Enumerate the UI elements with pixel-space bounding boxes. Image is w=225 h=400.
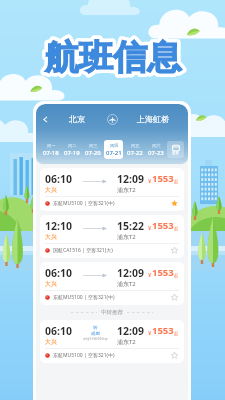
button[interactable]: Favourite (170, 199, 179, 208)
staticText: 起 (174, 179, 179, 185)
staticText: 大兴 (45, 186, 57, 194)
button[interactable]: 周四 (104, 140, 123, 159)
staticText: 周六 (152, 143, 161, 148)
button[interactable]: 上海虹桥 (124, 114, 182, 124)
button[interactable]: 06:10 (40, 262, 184, 305)
button[interactable]: 12:10 (40, 215, 184, 258)
button[interactable]: 北京 (54, 114, 100, 124)
staticText: 07-19 (64, 149, 80, 157)
staticText: 中转推荐 (101, 309, 123, 316)
staticText: 1553 (152, 219, 174, 232)
button[interactable]: 周六 (146, 140, 165, 159)
staticText: ¥ (148, 271, 152, 279)
button[interactable]: Swap cities (100, 108, 124, 130)
button[interactable]: Back (36, 109, 54, 129)
staticText: 周三 (89, 143, 98, 148)
staticText: 06:10 (45, 324, 72, 338)
staticText: 更多 (172, 151, 180, 156)
staticText: 东航MU5100 | 空客321(中) (53, 200, 115, 207)
button[interactable]: More dates (167, 141, 184, 158)
staticText: 12:10 (45, 219, 72, 233)
staticText: 06:10 (45, 266, 72, 280)
staticText: 07-23 (148, 149, 164, 157)
staticText: 07-20 (85, 149, 101, 157)
staticText: 大兴 (45, 233, 57, 241)
button[interactable]: 周五 (125, 140, 144, 159)
button[interactable]: 周二 (62, 140, 81, 159)
staticText: 东航MU5100 | 空客321(中) (53, 352, 115, 359)
staticText: 15:22 (117, 219, 144, 233)
button[interactable]: 06:10 (40, 168, 184, 211)
staticText: 06:10 (45, 172, 72, 186)
staticText: 周二 (68, 143, 77, 148)
staticText: 中转1小时10分钟 (83, 337, 108, 341)
staticText: 1553 (152, 172, 174, 185)
staticText: 航班信息 (45, 36, 181, 79)
staticText: ¥ (148, 177, 152, 185)
staticText: 1553 (152, 324, 174, 337)
staticText: 12:09 (117, 266, 144, 280)
staticText: 1553 (152, 266, 174, 279)
staticText: 成都 (91, 331, 100, 337)
staticText: 周四 (110, 143, 119, 148)
staticText: 大兴 (45, 280, 57, 288)
button[interactable]: Favourite (170, 293, 179, 302)
staticText: 浦东T2 (117, 338, 136, 346)
staticText: 上海虹桥 (137, 114, 169, 124)
button[interactable]: 周一 (41, 140, 60, 159)
staticText: 浦东T2 (117, 186, 136, 194)
staticText: 起 (174, 331, 179, 337)
staticText: 07-21 (106, 149, 122, 157)
staticText: 12:09 (117, 324, 144, 338)
staticText: 转 (93, 325, 98, 331)
staticText: 起 (174, 226, 179, 232)
staticText: 航班信息 (45, 36, 181, 79)
staticText: 07-18 (43, 149, 59, 157)
staticText: ¥ (148, 224, 152, 232)
staticText: 东航MU5100 | 空客321(中) (53, 294, 115, 301)
staticText: 北京 (69, 114, 85, 124)
button[interactable]: 06:10 (40, 320, 184, 363)
staticText: 浦东T2 (117, 233, 136, 241)
staticText: 周一 (47, 143, 56, 148)
staticText: 浦东T2 (117, 280, 136, 288)
staticText: 07-22 (127, 149, 143, 157)
button[interactable]: 周三 (83, 140, 102, 159)
staticText: 12:09 (117, 172, 144, 186)
staticText: 周五 (131, 143, 140, 148)
staticText: 国航CA1516 | 空客321(大) (53, 247, 113, 254)
button[interactable]: Favourite (170, 351, 179, 360)
staticText: 大兴 (45, 338, 57, 346)
staticText: 起 (174, 273, 179, 279)
staticText: ¥ (148, 329, 152, 337)
button[interactable]: Favourite (170, 246, 179, 255)
